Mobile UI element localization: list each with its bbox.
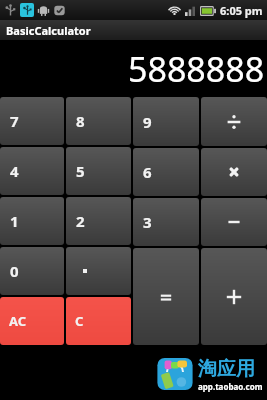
staticText: 淘应用 <box>198 357 255 381</box>
button[interactable]: Add <box>201 248 267 345</box>
button[interactable]: 4 <box>0 147 64 195</box>
button[interactable]: Multiply <box>201 148 267 196</box>
staticText: 2 <box>76 211 85 231</box>
staticText: 4 <box>10 161 19 181</box>
button[interactable]: C <box>66 297 131 345</box>
staticText: 5888888 <box>128 46 265 92</box>
button[interactable]: 8 <box>66 97 131 145</box>
staticText: 0 <box>10 261 19 281</box>
button[interactable]: 2 <box>66 197 131 245</box>
staticText: app.taobao.com <box>198 381 263 392</box>
staticText: AC <box>9 312 27 330</box>
staticText: 5 <box>76 161 85 181</box>
staticText: 6 <box>143 162 152 182</box>
button[interactable]: 1 <box>0 197 64 245</box>
staticText: BasicCalculator <box>6 23 91 38</box>
button[interactable]: 7 <box>0 97 64 145</box>
staticText: 3 <box>143 212 152 232</box>
button[interactable]: Equals <box>133 248 199 345</box>
button[interactable]: Subtract <box>201 198 267 246</box>
staticText: 6:05 pm <box>220 3 263 18</box>
staticText: 7 <box>10 111 19 131</box>
staticText: C <box>75 312 84 330</box>
button[interactable] <box>66 247 131 295</box>
staticText: 8 <box>76 111 85 131</box>
button[interactable]: AC <box>0 297 64 345</box>
button[interactable]: 9 <box>133 97 199 146</box>
button[interactable]: 3 <box>133 198 199 246</box>
staticText: 1 <box>10 211 19 231</box>
button[interactable]: 6 <box>133 148 199 196</box>
button[interactable]: 5 <box>66 147 131 195</box>
button[interactable]: 0 <box>0 247 64 295</box>
button[interactable]: Divide <box>201 97 267 146</box>
staticText: 9 <box>143 112 152 132</box>
